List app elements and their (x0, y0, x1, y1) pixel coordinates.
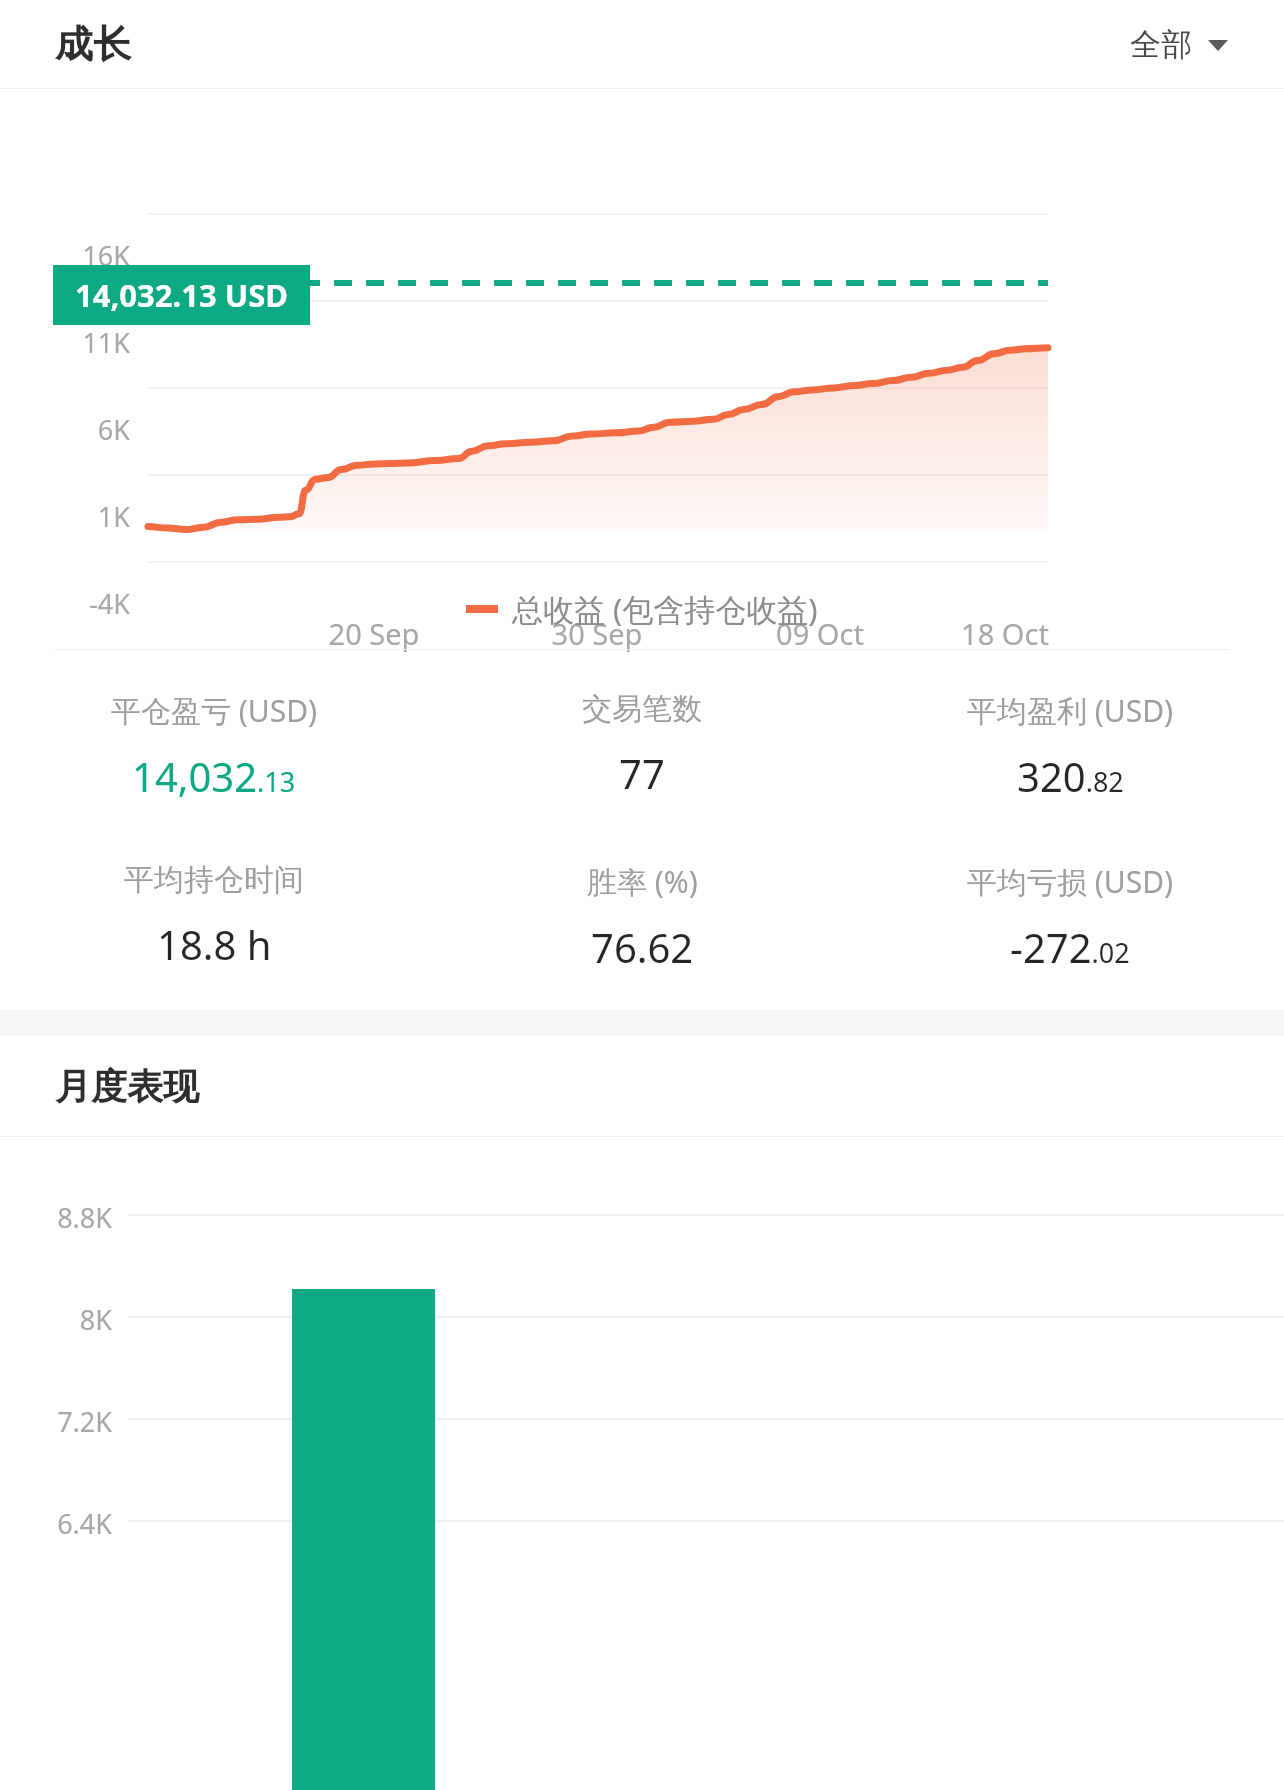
staticText: 1K (0, 498, 130, 535)
staticText: 18.8 h (157, 917, 272, 971)
button[interactable]: 平均持仓时间 (0, 861, 428, 971)
staticText: -4K (0, 585, 130, 622)
button[interactable]: 平仓盈亏 (USD) (0, 690, 428, 803)
staticText: 交易笔数 (582, 690, 702, 728)
staticText: 总收益 (包含持仓收益) (512, 588, 818, 630)
button[interactable]: 平均盈利 (USD) (856, 690, 1284, 803)
staticText: 成长 (55, 20, 131, 68)
staticText: 胜率 (%) (587, 861, 698, 902)
staticText: 平均盈利 (USD) (967, 690, 1174, 731)
staticText: 18 Oct (925, 614, 1085, 653)
button[interactable]: 全部 (1124, 17, 1234, 72)
staticText: 平均持仓时间 (124, 861, 304, 899)
staticText: 6K (0, 411, 130, 448)
staticText: 14,032.13 (132, 749, 296, 803)
staticText: 全部 (1130, 25, 1192, 64)
staticText: 8K (0, 1301, 112, 1338)
staticText: -272.02 (1010, 920, 1130, 974)
staticText: 平仓盈亏 (USD) (111, 690, 318, 731)
button[interactable]: 平均亏损 (USD) (856, 861, 1284, 974)
staticText: 月度表现 (55, 1064, 199, 1109)
button[interactable]: 交易笔数 (428, 690, 856, 800)
staticText: 30 Sep (517, 614, 677, 653)
staticText: 8.8K (0, 1199, 112, 1236)
staticText: 77 (619, 746, 665, 800)
button[interactable]: 胜率 (%) (428, 861, 856, 974)
staticText: 09 Oct (740, 614, 900, 653)
staticText: 14,032.13 USD (75, 274, 288, 316)
staticText: 20 Sep (294, 614, 454, 653)
staticText: 320.82 (1017, 749, 1124, 803)
staticText: 11K (0, 324, 130, 361)
staticText: 6.4K (0, 1505, 112, 1542)
staticText: 7.2K (0, 1403, 112, 1440)
staticText: 76.62 (591, 920, 694, 974)
staticText: 平均亏损 (USD) (967, 861, 1174, 902)
staticText: 16K (0, 237, 130, 274)
